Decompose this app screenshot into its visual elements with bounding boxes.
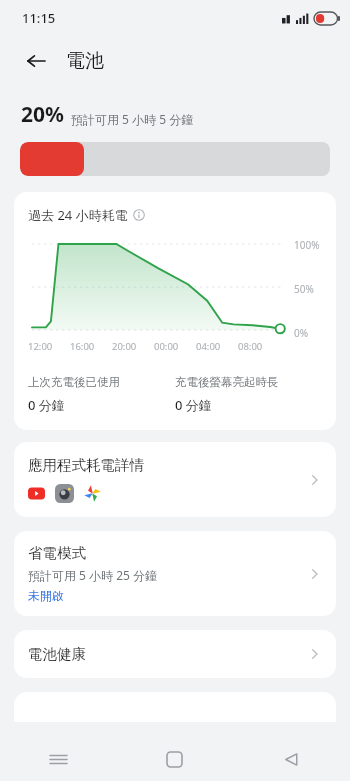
staticText: 20:00 (112, 340, 154, 353)
staticText: 預計可用 5 小時 5 分鐘 (71, 111, 194, 127)
staticText: 50% (294, 282, 314, 296)
staticText: 預計可用 5 小時 25 分鐘 (28, 567, 158, 583)
other: Open (306, 566, 322, 582)
staticText: 04:00 (196, 340, 238, 353)
button[interactable]: Back (16, 41, 56, 81)
staticText: 100% (294, 238, 320, 252)
button[interactable]: Home (116, 737, 233, 781)
staticText: 20% (21, 100, 64, 129)
staticText: 0% (294, 326, 309, 340)
other: Open (306, 472, 322, 488)
staticText: 應用程式耗電詳情 (28, 456, 144, 474)
staticText: 過去 24 小時耗電 (28, 206, 128, 224)
staticText: 12:00 (28, 340, 70, 353)
staticText: 電池健康 (28, 645, 306, 663)
button[interactable]: 省電模式 (14, 531, 336, 616)
staticText: 上次充電後已使用 (28, 375, 120, 389)
button[interactable]: 電池健康 (14, 630, 336, 678)
staticText: 11:15 (22, 9, 56, 27)
staticText: 0 分鐘 (175, 396, 212, 414)
button[interactable]: Back (233, 737, 350, 781)
button[interactable]: 應用程式耗電詳情 (14, 442, 336, 517)
other: Open (306, 646, 322, 662)
staticText: 16:00 (70, 340, 112, 353)
staticText: 0 分鐘 (28, 396, 65, 414)
staticText: 00:00 (154, 340, 196, 353)
staticText: 未開啟 (28, 588, 64, 603)
staticText: 充電後螢幕亮起時長 (175, 375, 279, 389)
staticText: 省電模式 (28, 544, 86, 562)
staticText: 08:00 (238, 340, 280, 353)
staticText: 電池 (66, 49, 104, 73)
button[interactable]: Recents (0, 737, 116, 781)
